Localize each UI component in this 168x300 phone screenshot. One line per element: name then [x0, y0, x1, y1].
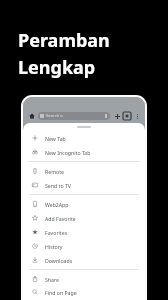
staticText: Find on Page [45, 289, 77, 296]
staticText: Remote [45, 168, 64, 175]
button[interactable]: Find on Page [23, 286, 145, 298]
button[interactable]: Remote [23, 164, 145, 178]
staticText: Web2App [45, 201, 69, 208]
staticText: Peramban [18, 28, 110, 53]
staticText: History [45, 243, 63, 250]
button[interactable]: New Tab [23, 131, 145, 145]
staticText: Lengkap [18, 55, 96, 80]
button[interactable]: Tabs [123, 112, 131, 120]
staticText: Add Favorite [45, 215, 76, 222]
button[interactable]: Add Favorite [23, 211, 145, 225]
button[interactable]: History [23, 239, 145, 253]
button[interactable]: Downloads [23, 253, 145, 267]
button[interactable]: Share [23, 272, 145, 286]
button[interactable]: New Incognito Tab [23, 145, 145, 159]
button[interactable]: Send to TV [23, 178, 145, 192]
button[interactable]: More options [133, 112, 141, 120]
button[interactable]: Home [27, 111, 36, 120]
staticText: Search o [46, 113, 63, 119]
staticText: Share [45, 276, 59, 283]
staticText: New Incognito Tab [45, 149, 91, 156]
staticText: Downloads [45, 257, 73, 264]
staticText: Favorites [45, 229, 68, 236]
button[interactable]: Web2App [23, 197, 145, 211]
button[interactable]: Search o [38, 112, 110, 120]
staticText: Send to TV [45, 182, 71, 189]
button[interactable]: Favorites [23, 225, 145, 239]
staticText: New Tab [45, 135, 66, 142]
button[interactable]: New tab [113, 112, 121, 120]
